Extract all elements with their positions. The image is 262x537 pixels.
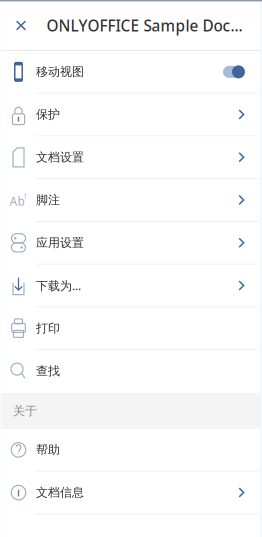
- button[interactable]: 保护: [0, 94, 262, 137]
- button[interactable]: 移动视图: [0, 51, 262, 94]
- staticText: 应用设置: [36, 235, 84, 250]
- staticText: Ab: [9, 193, 24, 209]
- staticText: 移动视图: [36, 64, 84, 79]
- staticText: 查找: [36, 364, 60, 378]
- button[interactable]: 应用设置: [0, 222, 262, 265]
- button[interactable]: 文档设置: [0, 136, 262, 179]
- staticText: 下载为...: [36, 278, 81, 294]
- staticText: 1: [23, 192, 27, 201]
- button[interactable]: 帮助: [0, 429, 262, 472]
- button[interactable]: 查找: [0, 350, 262, 393]
- staticText: 脚注: [36, 193, 60, 207]
- staticText: 帮助: [36, 442, 60, 457]
- staticText: 关于: [13, 404, 37, 418]
- button[interactable]: 文档信息: [0, 472, 262, 515]
- button[interactable]: Ab: [0, 179, 262, 222]
- staticText: 保护: [36, 107, 60, 122]
- button[interactable]: 打印: [0, 307, 262, 350]
- staticText: 打印: [36, 321, 60, 336]
- staticText: 文档设置: [36, 150, 84, 165]
- button[interactable]: 下载为...: [0, 265, 262, 308]
- staticText: ONLYOFFICE Sample Doc...: [46, 15, 242, 36]
- button[interactable]: Close: [8, 12, 34, 38]
- staticText: 文档信息: [36, 485, 84, 500]
